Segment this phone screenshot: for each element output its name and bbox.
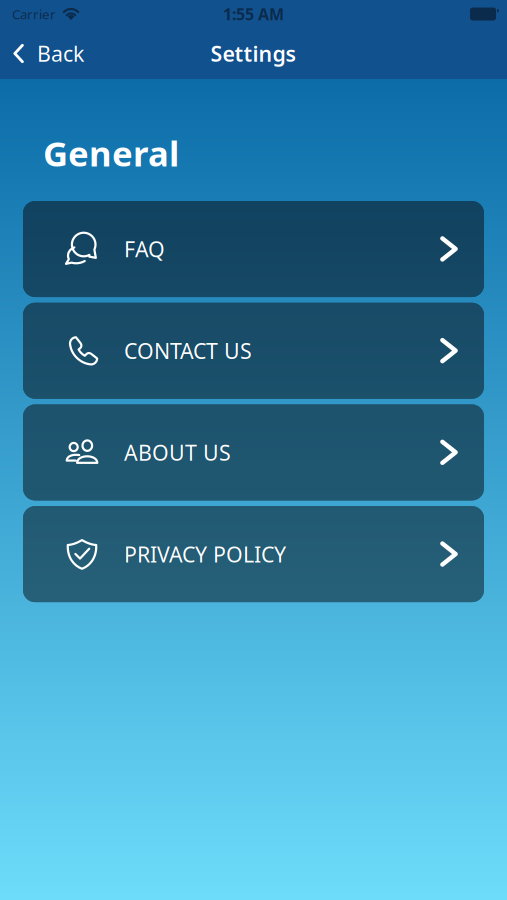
staticText: PRIVACY POLICY bbox=[124, 540, 286, 568]
button[interactable]: FAQ bbox=[23, 201, 484, 297]
staticText: General bbox=[43, 130, 179, 176]
button[interactable]: CONTACT US bbox=[23, 303, 484, 399]
staticText: ABOUT US bbox=[124, 438, 231, 467]
staticText: FAQ bbox=[124, 235, 165, 263]
button[interactable]: PRIVACY POLICY bbox=[23, 506, 484, 602]
staticText: Carrier bbox=[12, 5, 56, 23]
staticText: 1:55 AM bbox=[223, 3, 284, 25]
staticText: Back bbox=[37, 39, 84, 68]
staticText: Settings bbox=[210, 39, 296, 68]
button[interactable]: Back bbox=[0, 28, 98, 79]
button[interactable]: ABOUT US bbox=[23, 404, 484, 500]
staticText: CONTACT US bbox=[124, 337, 252, 365]
